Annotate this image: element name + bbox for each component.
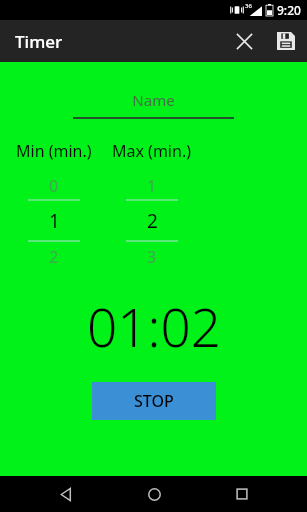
button[interactable]: STOP xyxy=(92,382,216,420)
staticText: Timer xyxy=(15,30,63,53)
staticText: 36 xyxy=(245,2,252,10)
button[interactable]: Close xyxy=(223,20,265,62)
button[interactable]: 0 xyxy=(28,173,80,272)
button[interactable]: Recents xyxy=(219,476,265,512)
button[interactable]: 1 xyxy=(126,173,178,272)
staticText: Max (min.) xyxy=(112,140,191,162)
button[interactable]: Save xyxy=(265,20,307,62)
staticText: 1 xyxy=(147,175,157,197)
staticText: Min (min.) xyxy=(16,140,92,162)
button[interactable]: Back xyxy=(42,476,88,512)
staticText: 0 xyxy=(49,175,59,197)
button[interactable]: Home xyxy=(131,476,177,512)
staticText: STOP xyxy=(134,390,174,412)
staticText: Name xyxy=(132,90,175,110)
staticText: 3 xyxy=(147,246,157,268)
staticText: 9:20 xyxy=(277,2,301,18)
staticText: 2 xyxy=(147,208,158,234)
staticText: 1 xyxy=(49,208,60,234)
staticText: 01:02 xyxy=(87,290,221,362)
staticText: 2 xyxy=(49,246,59,268)
button[interactable]: Name xyxy=(73,90,234,119)
